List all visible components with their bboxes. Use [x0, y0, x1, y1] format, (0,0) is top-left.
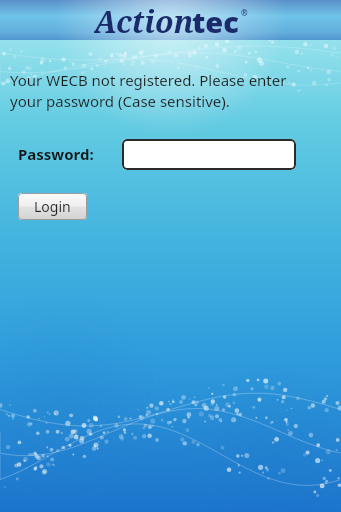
staticText: Your WECB not registered. Please enter y…	[10, 70, 319, 112]
staticText: Login	[34, 197, 71, 216]
staticText: ®	[241, 7, 248, 18]
staticText: tec	[192, 2, 239, 41]
button[interactable]: Login	[18, 193, 87, 220]
staticText: Password:	[18, 144, 94, 164]
other: Actiontec	[94, 1, 248, 41]
staticText: Action	[94, 1, 194, 41]
button[interactable]	[122, 139, 296, 170]
